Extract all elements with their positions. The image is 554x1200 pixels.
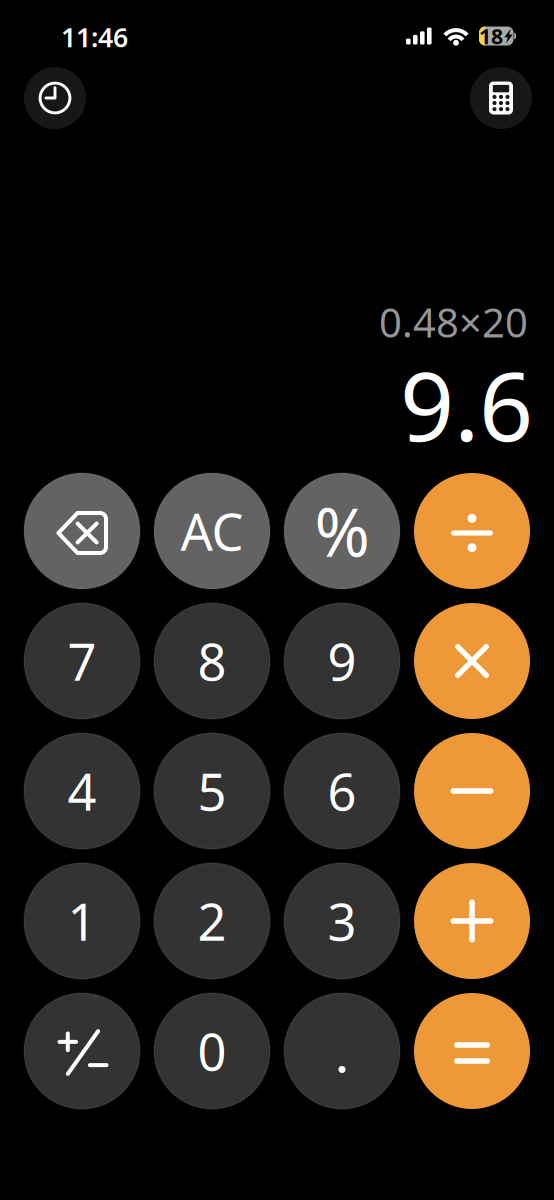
- button[interactable]: 9: [284, 603, 400, 719]
- staticText: 9.6: [400, 342, 533, 467]
- staticText: 1: [67, 887, 96, 955]
- button[interactable]: Decimal point: [284, 993, 400, 1109]
- button[interactable]: Multiply: [414, 603, 530, 719]
- button[interactable]: 2: [154, 863, 270, 979]
- staticText: AC: [180, 497, 243, 565]
- button[interactable]: AC: [154, 473, 270, 589]
- staticText: 9: [327, 627, 356, 695]
- button[interactable]: Subtract: [414, 733, 530, 849]
- staticText: %: [314, 487, 369, 575]
- staticText: 6: [327, 757, 356, 825]
- button[interactable]: Delete: [24, 473, 140, 589]
- button[interactable]: Add: [414, 863, 530, 979]
- staticText: 0: [197, 1017, 226, 1085]
- button[interactable]: 7: [24, 603, 140, 719]
- staticText: 2: [197, 887, 226, 955]
- button[interactable]: 1: [24, 863, 140, 979]
- button[interactable]: Divide: [414, 473, 530, 589]
- button[interactable]: %: [284, 473, 400, 589]
- button[interactable]: 6: [284, 733, 400, 849]
- button[interactable]: Plus minus: [24, 993, 140, 1109]
- button[interactable]: Calculator: [470, 67, 532, 129]
- staticText: 8: [197, 627, 226, 695]
- button[interactable]: Equals: [414, 993, 530, 1109]
- staticText: 5: [197, 757, 226, 825]
- staticText: 3: [327, 887, 356, 955]
- staticText: 18: [479, 22, 503, 50]
- button[interactable]: 3: [284, 863, 400, 979]
- staticText: 11:46: [61, 19, 128, 55]
- button[interactable]: History: [24, 67, 86, 129]
- staticText: 0.48×20: [379, 295, 528, 348]
- button[interactable]: 8: [154, 603, 270, 719]
- button[interactable]: 0: [154, 993, 270, 1109]
- staticText: 4: [67, 757, 96, 825]
- button[interactable]: 5: [154, 733, 270, 849]
- button[interactable]: 4: [24, 733, 140, 849]
- staticText: 7: [67, 627, 96, 695]
